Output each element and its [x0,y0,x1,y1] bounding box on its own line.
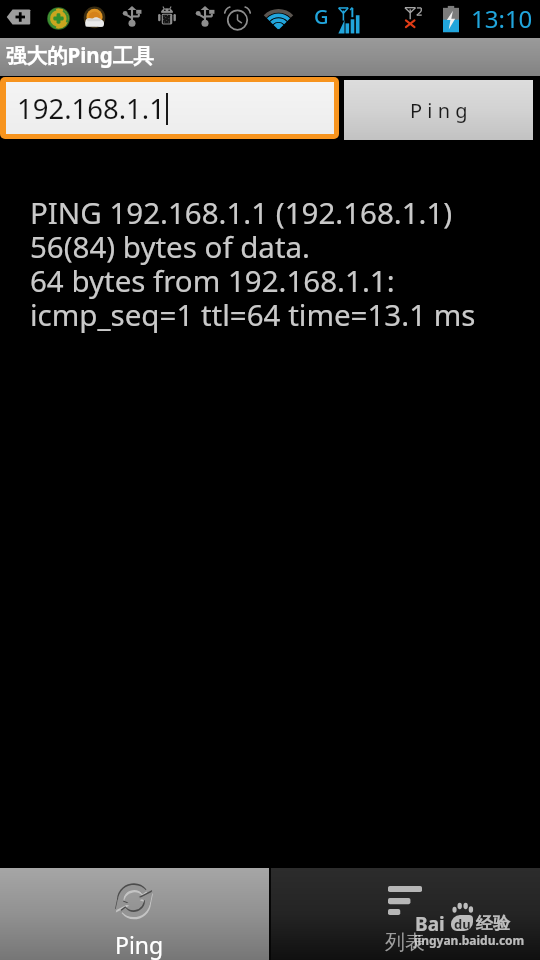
staticText: du [454,915,471,931]
staticText: 强大的Ping工具 [6,41,154,69]
staticText: Bai [415,911,445,937]
button[interactable]: P i n g [344,80,533,140]
staticText: Ping [115,929,164,960]
staticText: PING 192.168.1.1 (192.168.1.1) 56(84) by… [30,197,476,333]
button[interactable]: 192.168.1.1 [6,82,334,134]
staticText: 经验 [476,913,510,934]
staticText: G [314,3,329,30]
staticText: P i n g [410,97,468,124]
button[interactable]: Ping [0,868,269,960]
staticText: 列表 [385,930,425,955]
button[interactable]: 列表 [271,868,540,960]
staticText: 13:10 [471,2,533,35]
staticText: 192.168.1.1 [17,90,165,127]
staticText: jingyan.baidu.com [414,932,525,948]
